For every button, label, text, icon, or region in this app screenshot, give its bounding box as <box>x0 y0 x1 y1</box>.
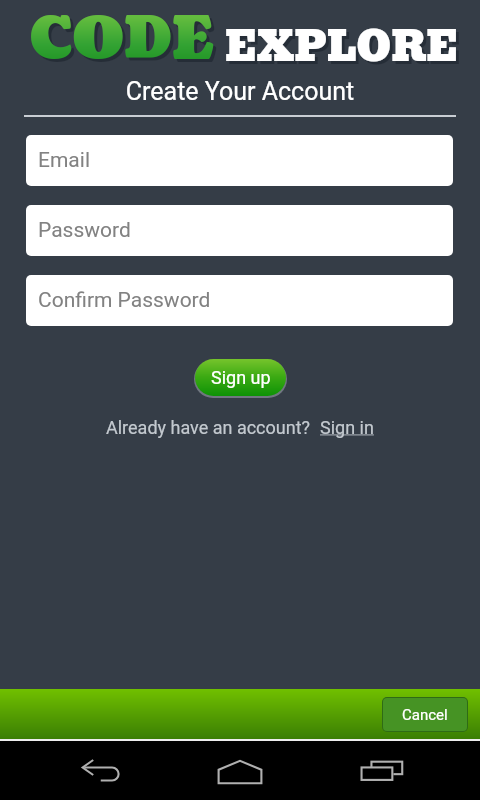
button[interactable]: Confirm Password <box>26 275 453 326</box>
button[interactable]: Cancel <box>383 698 467 731</box>
button[interactable]: Home <box>160 741 320 800</box>
button[interactable]: Sign up <box>195 359 286 396</box>
button[interactable]: Email <box>26 135 453 186</box>
staticText: Create Your Account <box>0 77 480 106</box>
button[interactable]: Sign in <box>320 417 374 438</box>
staticText: Already have an account? <box>106 417 311 438</box>
button[interactable]: Password <box>26 205 453 256</box>
staticText: Email <box>38 148 90 173</box>
button[interactable]: Back <box>0 741 160 800</box>
staticText: Confirm Password <box>38 288 211 313</box>
staticText: CODE <box>33 3 217 80</box>
staticText: Cancel <box>402 706 448 724</box>
staticText: EXPLORE <box>225 14 459 80</box>
staticText: CODE <box>30 0 214 77</box>
button[interactable]: Recent apps <box>320 741 480 800</box>
staticText: Password <box>38 218 131 243</box>
staticText: EXPLORE <box>228 17 462 83</box>
staticText: Sign up <box>211 367 271 388</box>
